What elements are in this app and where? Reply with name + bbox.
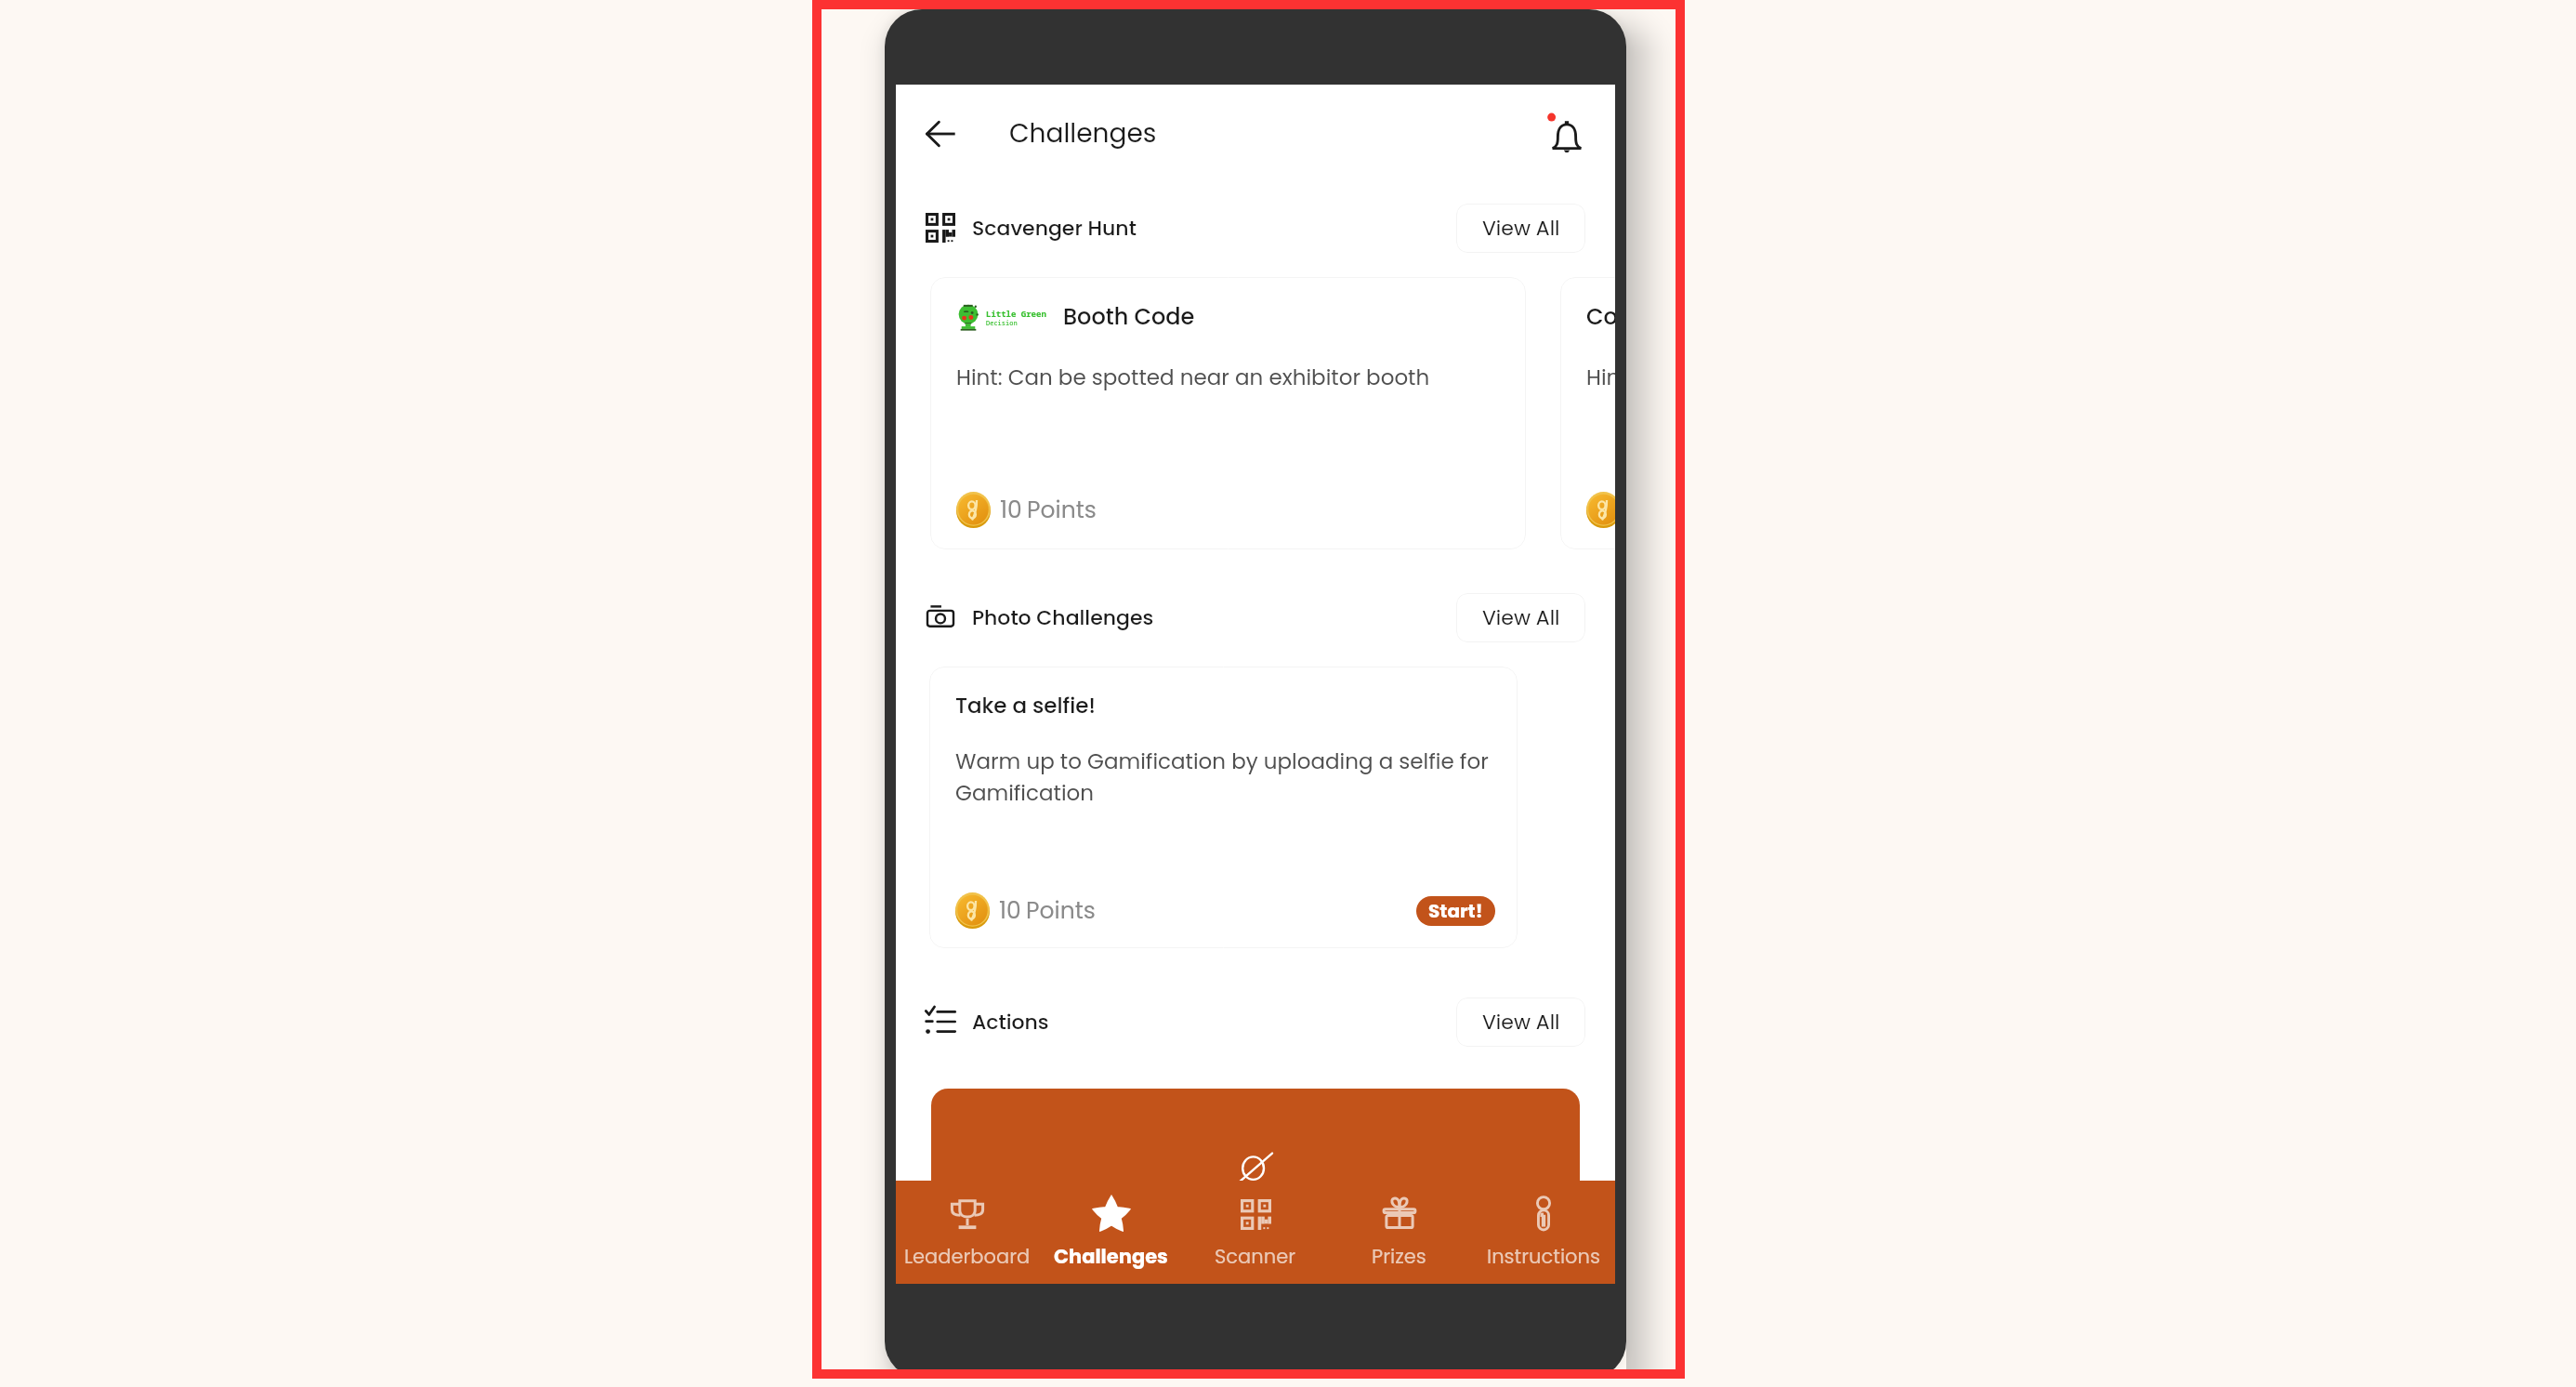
staticText: Take a selfie! [955, 691, 1096, 720]
button[interactable]: Prizes [1327, 1181, 1471, 1284]
button[interactable]: View All [1456, 593, 1585, 642]
staticText: Warm up to Gamification by uploading a s… [955, 746, 1495, 808]
staticText: 10 [1000, 494, 1022, 526]
staticText: Points [1027, 494, 1097, 526]
button[interactable]: Challenges [1039, 1181, 1183, 1284]
staticText: Scanner [1215, 1243, 1296, 1270]
staticText: Start! [1428, 898, 1483, 924]
staticText: Prizes [1372, 1243, 1426, 1270]
staticText: Leaderboard [904, 1243, 1031, 1270]
button[interactable]: Little Green [930, 277, 1526, 549]
staticText: Scavenger Hunt [972, 214, 1137, 243]
button[interactable]: View All [1456, 204, 1585, 253]
staticText: View All [1482, 214, 1560, 243]
button[interactable]: Notifications [1539, 106, 1595, 162]
staticText: Challenges [1054, 1243, 1168, 1270]
button[interactable]: View All [1456, 997, 1585, 1047]
staticText: Booth Code [1063, 301, 1195, 333]
staticText: Decision [986, 319, 1018, 328]
staticText: 10 [999, 894, 1021, 927]
staticText: Actions [972, 1008, 1049, 1037]
button[interactable]: Take a selfie! [929, 667, 1518, 948]
button[interactable]: Instructions [1471, 1181, 1615, 1284]
staticText: Photo Challenges [972, 603, 1154, 632]
staticText: Points [1026, 894, 1096, 927]
staticText: Code Hunt [1586, 301, 1615, 333]
button[interactable]: Scanner [1183, 1181, 1327, 1284]
staticText: View All [1482, 1008, 1560, 1037]
staticText: Hint: Can be spotted near an exhibitor b… [1586, 363, 1615, 392]
staticText: Instructions [1487, 1243, 1600, 1270]
staticText: Hint: Can be spotted near an exhibitor b… [956, 363, 1430, 392]
staticText: Little Green [986, 308, 1046, 319]
button[interactable] [931, 1089, 1580, 1284]
button[interactable]: Back [916, 110, 965, 158]
button[interactable]: Start! [1416, 896, 1495, 926]
button[interactable]: Code Hunt [1560, 277, 1615, 549]
staticText: Challenges [1009, 115, 1157, 152]
staticText: View All [1482, 603, 1560, 632]
button[interactable]: Leaderboard [896, 1181, 1039, 1284]
